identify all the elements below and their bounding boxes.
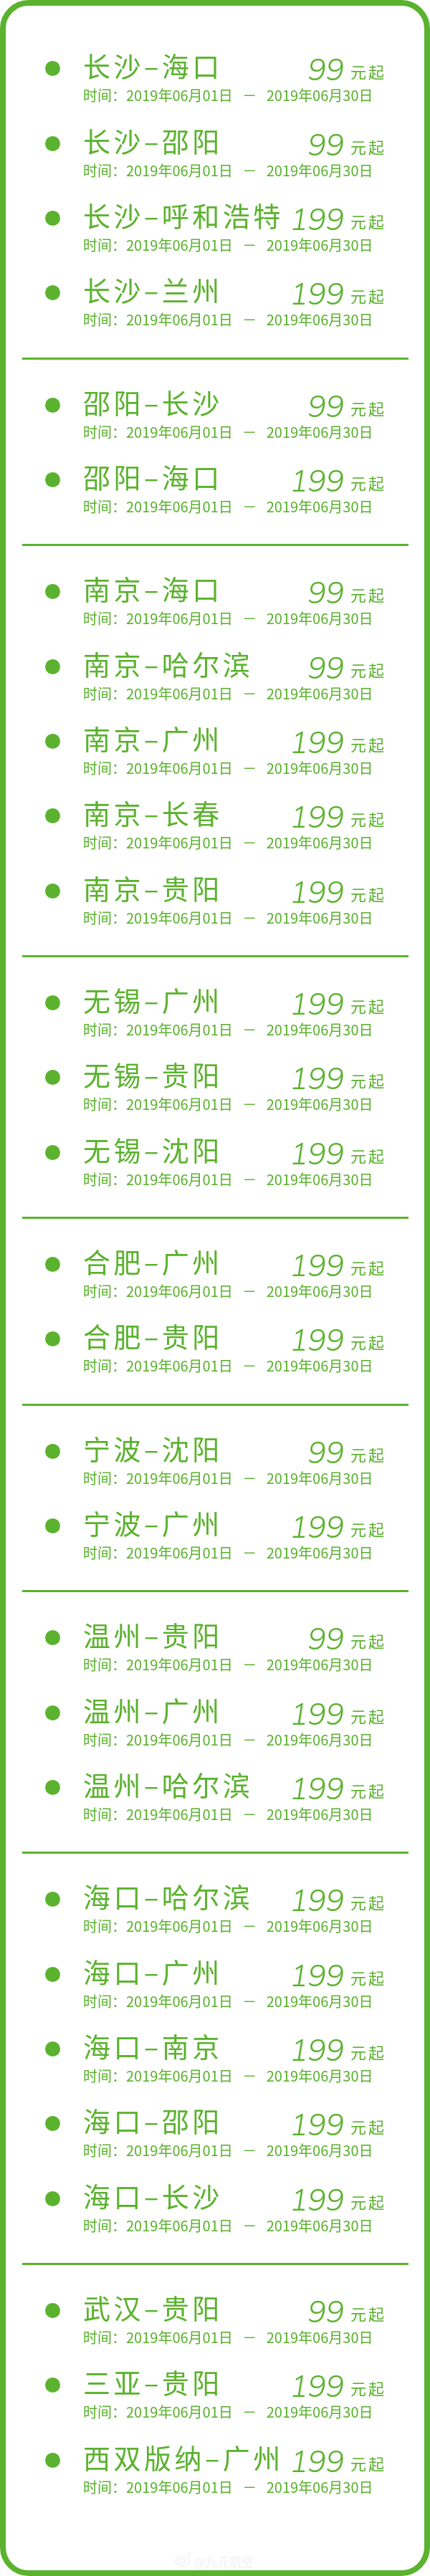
- staticText: 199: [215, 798, 344, 835]
- staticText: 元起: [350, 59, 387, 82]
- staticText: 元起: [350, 1144, 387, 1167]
- staticText: 时间：2019年06月01日 － 2019年06月30日: [83, 2476, 373, 2497]
- button[interactable]: 南京–海口: [0, 562, 430, 637]
- button[interactable]: 无锡–广州: [0, 974, 430, 1048]
- staticText: 时间：2019年06月01日 － 2019年06月30日: [83, 1169, 373, 1189]
- staticText: 邵阳–长沙: [83, 382, 223, 421]
- staticText: 199: [215, 1321, 344, 1359]
- staticText: 时间：2019年06月01日 － 2019年06月30日: [83, 309, 373, 330]
- staticText: 时间：2019年06月01日 － 2019年06月30日: [83, 1093, 373, 1114]
- staticText: 温州–哈尔滨: [83, 1764, 254, 1804]
- staticText: 元起: [350, 1517, 387, 1540]
- staticText: 时间：2019年06月01日 － 2019年06月30日: [83, 1804, 373, 1824]
- staticText: 宁波–广州: [83, 1503, 223, 1542]
- staticText: 99: [215, 50, 344, 88]
- staticText: 元起: [350, 284, 387, 307]
- staticText: 99: [215, 648, 344, 686]
- staticText: 元起: [350, 2115, 387, 2137]
- staticText: 199: [215, 1881, 344, 1919]
- staticText: 宁波–沈阳: [83, 1428, 223, 1467]
- staticText: 元起: [350, 1965, 387, 1988]
- button[interactable]: 南京–广州: [0, 712, 430, 787]
- button[interactable]: 长沙–兰州: [0, 264, 430, 338]
- staticText: 时间：2019年06月01日 － 2019年06月30日: [83, 1729, 373, 1750]
- button[interactable]: 三亚–贵阳: [0, 2356, 430, 2431]
- button[interactable]: 海口–邵阳: [0, 2094, 430, 2169]
- staticText: 99: [215, 2292, 344, 2330]
- staticText: 元起: [350, 807, 387, 830]
- staticText: 99: [215, 1433, 344, 1471]
- button[interactable]: 南京–哈尔滨: [0, 638, 430, 712]
- staticText: 时间：2019年06月01日 － 2019年06月30日: [83, 757, 373, 778]
- staticText: 元起: [350, 471, 387, 494]
- staticText: 元起: [350, 209, 387, 232]
- staticText: 时间：2019年06月01日 － 2019年06月30日: [83, 1991, 373, 2011]
- button[interactable]: 温州–哈尔滨: [0, 1758, 430, 1833]
- button[interactable]: 邵阳–海口: [0, 451, 430, 525]
- button[interactable]: 宁波–沈阳: [0, 1422, 430, 1497]
- staticText: 无锡–沈阳: [83, 1129, 223, 1169]
- button[interactable]: 合肥–贵阳: [0, 1310, 430, 1384]
- button[interactable]: 长沙–呼和浩特: [0, 189, 430, 264]
- staticText: 时间：2019年06月01日 － 2019年06月30日: [83, 1019, 373, 1040]
- button[interactable]: 温州–贵阳: [0, 1609, 430, 1683]
- staticText: 长沙–海口: [83, 45, 223, 85]
- staticText: 时间：2019年06月01日 － 2019年06月30日: [83, 160, 373, 181]
- staticText: 南京–海口: [83, 568, 223, 608]
- staticText: 武汉–贵阳: [83, 2287, 223, 2327]
- staticText: 温州–广州: [83, 1690, 223, 1729]
- button[interactable]: 长沙–邵阳: [0, 115, 430, 189]
- staticText: 元起: [350, 2451, 387, 2474]
- staticText: 199: [215, 1769, 344, 1807]
- button[interactable]: 宁波–广州: [0, 1497, 430, 1571]
- staticText: 元起: [350, 583, 387, 605]
- staticText: 时间：2019年06月01日 － 2019年06月30日: [83, 2065, 373, 2086]
- staticText: 时间：2019年06月01日 － 2019年06月30日: [83, 2327, 373, 2347]
- staticText: 合肥–广州: [83, 1241, 223, 1280]
- staticText: 时间：2019年06月01日 － 2019年06月30日: [83, 496, 373, 517]
- staticText: 元起: [350, 396, 387, 419]
- staticText: 199: [215, 1059, 344, 1097]
- staticText: 199: [215, 274, 344, 312]
- button[interactable]: 海口–广州: [0, 1945, 430, 2020]
- staticText: 99: [215, 387, 344, 425]
- staticText: 海口–邵阳: [83, 2100, 223, 2140]
- button[interactable]: 长沙–海口: [0, 39, 430, 114]
- button[interactable]: 合肥–广州: [0, 1235, 430, 1310]
- button[interactable]: 南京–贵阳: [0, 862, 430, 937]
- staticText: 时间：2019年06月01日 － 2019年06月30日: [83, 234, 373, 255]
- staticText: 元起: [350, 1704, 387, 1727]
- button[interactable]: 武汉–贵阳: [0, 2281, 430, 2356]
- staticText: @九元航空: [193, 2552, 254, 2570]
- button[interactable]: 海口–哈尔滨: [0, 1870, 430, 1945]
- staticText: 南京–贵阳: [83, 868, 223, 907]
- staticText: 时间：2019年06月01日 － 2019年06月30日: [83, 421, 373, 442]
- staticText: 元起: [350, 732, 387, 755]
- staticText: 海口–哈尔滨: [83, 1876, 254, 1915]
- staticText: 元起: [350, 2302, 387, 2324]
- staticText: 元起: [350, 1778, 387, 1801]
- staticText: 元起: [350, 1330, 387, 1353]
- button[interactable]: 南京–长春: [0, 787, 430, 861]
- button[interactable]: 温州–广州: [0, 1684, 430, 1758]
- staticText: 无锡–广州: [83, 980, 223, 1019]
- staticText: 长沙–邵阳: [83, 120, 223, 160]
- button[interactable]: 西双版纳–广州: [0, 2431, 430, 2506]
- staticText: 时间：2019年06月01日 － 2019年06月30日: [83, 1654, 373, 1675]
- staticText: 元起: [350, 1068, 387, 1091]
- staticText: 199: [215, 2105, 344, 2143]
- staticText: 邵阳–海口: [83, 456, 223, 496]
- staticText: 南京–广州: [83, 718, 223, 757]
- staticText: 长沙–兰州: [83, 269, 223, 309]
- staticText: 西双版纳–广州: [83, 2437, 284, 2476]
- button[interactable]: 无锡–沈阳: [0, 1124, 430, 1198]
- button[interactable]: 海口–南京: [0, 2020, 430, 2094]
- staticText: 199: [215, 2367, 344, 2405]
- button[interactable]: 无锡–贵阳: [0, 1048, 430, 1123]
- staticText: 199: [215, 723, 344, 761]
- staticText: 199: [215, 1246, 344, 1284]
- button[interactable]: 海口–长沙: [0, 2170, 430, 2244]
- button[interactable]: 邵阳–长沙: [0, 376, 430, 451]
- staticText: 199: [215, 200, 344, 238]
- staticText: 199: [215, 461, 344, 499]
